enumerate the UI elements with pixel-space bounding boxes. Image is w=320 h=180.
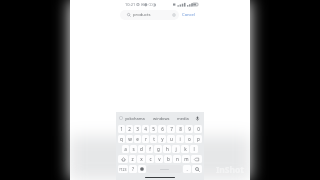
staticText: k — [184, 146, 187, 152]
staticText: 9 — [188, 126, 191, 132]
button[interactable]: m — [182, 155, 190, 163]
button[interactable]: Voice input — [195, 116, 200, 121]
button[interactable]: r — [142, 135, 149, 143]
button[interactable]: 1 — [118, 125, 125, 133]
staticText: Cancel — [182, 12, 196, 18]
staticText: h — [166, 146, 169, 152]
button[interactable]: z — [129, 155, 136, 163]
button[interactable]: p — [194, 135, 202, 143]
button[interactable]: Space — [147, 165, 182, 173]
staticText: f — [149, 146, 151, 152]
button[interactable]: s — [130, 145, 137, 153]
button[interactable]: y — [158, 135, 166, 143]
staticText: z — [131, 156, 134, 162]
button[interactable]: Shift — [118, 155, 128, 163]
staticText: products — [133, 12, 151, 18]
staticText: 3 — [136, 126, 139, 132]
button[interactable]: Backspace — [191, 155, 202, 163]
button[interactable]: l — [190, 145, 198, 153]
button[interactable]: ? — [129, 165, 137, 173]
staticText: o — [188, 136, 191, 142]
staticText: 6 — [161, 126, 164, 132]
staticText: t — [153, 136, 155, 142]
button[interactable]: products — [120, 10, 179, 20]
button[interactable]: 5 — [150, 125, 157, 133]
button[interactable]: 7 — [167, 125, 175, 133]
staticText: q — [120, 136, 123, 142]
button[interactable]: a — [122, 145, 129, 153]
staticText: j — [175, 146, 177, 152]
button[interactable]: o — [185, 135, 193, 143]
staticText: yokohama — [125, 116, 145, 121]
button[interactable]: f — [146, 145, 153, 153]
staticText: l — [193, 146, 195, 152]
staticText: . — [186, 166, 188, 172]
staticText: 8 — [179, 126, 182, 132]
button[interactable]: v — [155, 155, 163, 163]
staticText: ? — [132, 166, 134, 172]
button[interactable]: Search — [192, 165, 202, 173]
button[interactable]: 9 — [185, 125, 193, 133]
button[interactable]: k — [181, 145, 189, 153]
button[interactable]: h — [163, 145, 171, 153]
staticText: y — [161, 136, 164, 142]
button[interactable]: 2 — [126, 125, 133, 133]
button[interactable]: Cancel — [180, 12, 198, 18]
staticText: 10:21 ✪ ✉● ⓘ◑ — [125, 2, 157, 7]
button[interactable]: yokohama — [124, 116, 146, 121]
staticText: b — [167, 156, 170, 162]
staticText: u — [170, 136, 173, 142]
button[interactable]: d — [138, 145, 145, 153]
staticText: c — [149, 156, 152, 162]
staticText: 1 — [120, 126, 123, 132]
button[interactable]: x — [137, 155, 145, 163]
staticText: m — [184, 156, 189, 162]
button[interactable]: w — [126, 135, 133, 143]
staticText: 0 — [197, 126, 200, 132]
staticText: i — [179, 136, 181, 142]
staticText: v — [158, 156, 161, 162]
staticText: d — [140, 146, 143, 152]
button[interactable]: Google — [119, 116, 123, 120]
button[interactable]: 3 — [134, 125, 141, 133]
staticText: n — [176, 156, 179, 162]
button[interactable]: b — [164, 155, 172, 163]
staticText: InShot — [216, 164, 245, 176]
button[interactable]: j — [172, 145, 180, 153]
button[interactable]: Emoji — [138, 165, 146, 173]
button[interactable]: . — [183, 165, 191, 173]
button[interactable]: e — [134, 135, 141, 143]
button[interactable]: 8 — [176, 125, 184, 133]
staticText: 7 — [170, 126, 173, 132]
button[interactable]: 6 — [158, 125, 166, 133]
button[interactable]: ?123 — [118, 165, 128, 173]
button[interactable]: n — [173, 155, 181, 163]
button[interactable]: 4 — [142, 125, 149, 133]
button[interactable]: g — [154, 145, 162, 153]
staticText: g — [157, 146, 160, 152]
staticText: media — [177, 116, 189, 121]
button[interactable]: 0 — [194, 125, 202, 133]
staticText: 2 — [128, 126, 131, 132]
staticText: p — [197, 136, 200, 142]
staticText: 4 — [144, 126, 147, 132]
staticText: e — [136, 136, 139, 142]
staticText: 5 — [152, 126, 155, 132]
staticText: ?123 — [119, 167, 127, 172]
button[interactable]: windows — [152, 116, 171, 121]
staticText: r — [145, 136, 147, 142]
button[interactable]: t — [150, 135, 157, 143]
button[interactable]: c — [146, 155, 154, 163]
button[interactable]: media — [176, 116, 190, 121]
staticText: s — [132, 146, 135, 152]
staticText: x — [140, 156, 143, 162]
button[interactable]: i — [176, 135, 184, 143]
button[interactable]: u — [167, 135, 175, 143]
staticText: windows — [153, 116, 170, 121]
staticText: a — [124, 146, 127, 152]
button[interactable]: q — [118, 135, 125, 143]
staticText: w — [128, 136, 132, 142]
